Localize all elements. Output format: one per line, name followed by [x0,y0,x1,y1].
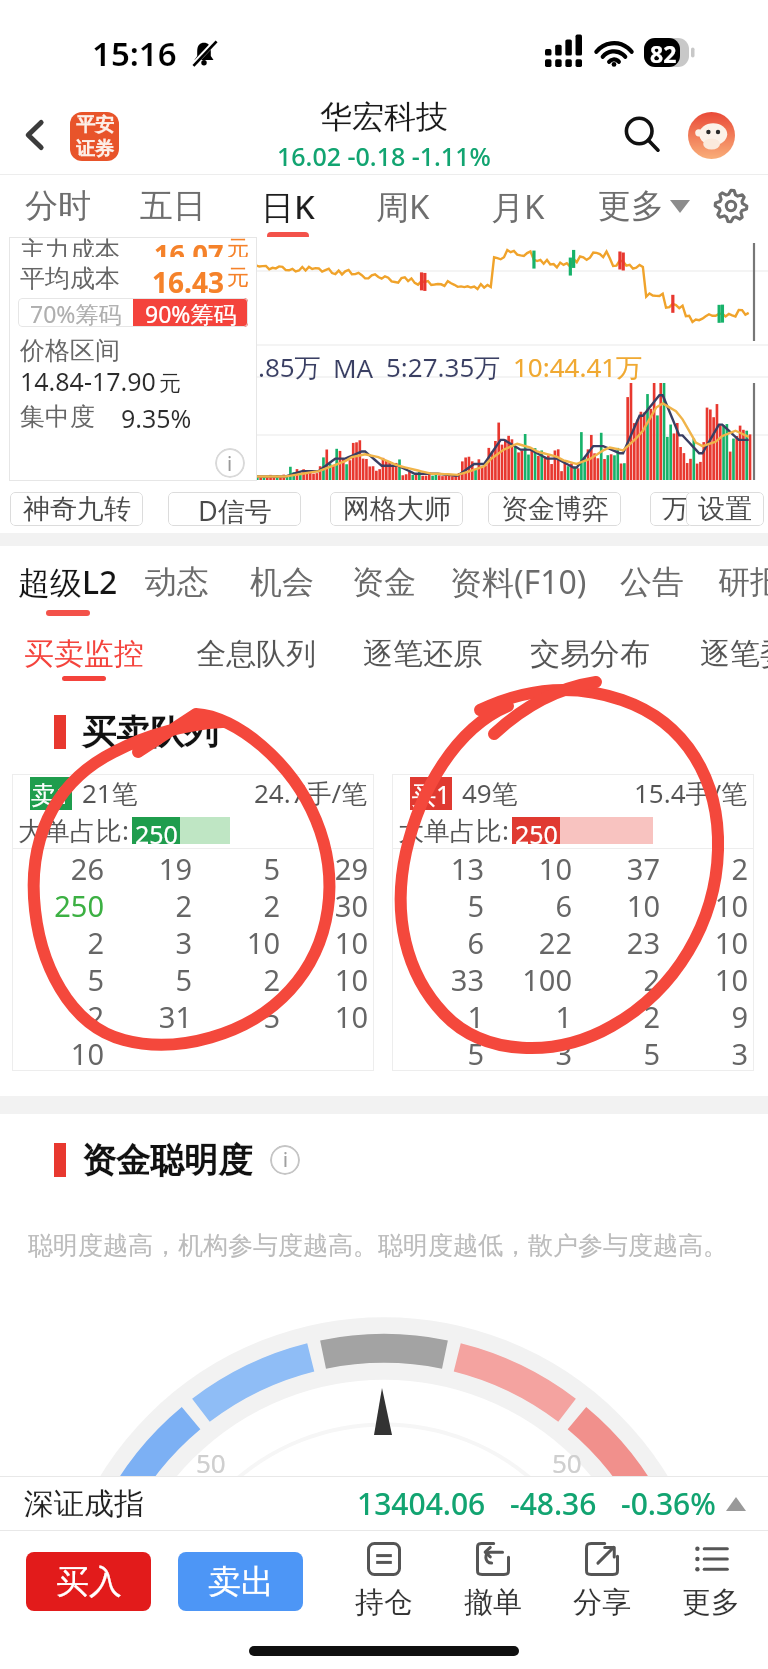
staticText: 2 [87,997,104,1034]
staticText: 机会 [250,562,314,602]
staticText: 日K [261,184,315,229]
staticText: 10 [246,923,280,960]
button[interactable]: 更多 [592,185,696,227]
staticText: 49笔 [462,775,518,811]
staticText: 价格区间 [20,335,120,366]
staticText: 平均成本 [20,263,120,293]
staticText: 2 [643,997,660,1034]
staticText: 买1 [411,777,451,810]
staticText: 2 [263,960,280,997]
button[interactable]: 撤单 [438,1542,547,1621]
staticText: 神奇九转 [23,492,131,526]
button[interactable]: 公告 [608,546,696,617]
button[interactable]: 设置 [686,492,764,526]
staticText: 资金 [352,562,416,602]
staticText: 交易分布 [530,635,650,673]
button[interactable]: Info [270,1145,300,1175]
staticText: 5 [467,1034,484,1071]
button[interactable]: 日K [231,175,344,237]
staticText: 23 [626,923,660,960]
button[interactable]: 万 [650,492,700,526]
button[interactable]: 逐笔还原 [351,617,495,690]
staticText: 10 [714,886,748,923]
staticText: 70%筹码 [30,298,122,327]
staticText: 9.35% [121,401,192,435]
staticText: 15.4手/笔 [634,775,748,811]
staticText: 24.7手/笔 [254,775,368,811]
button[interactable]: Profile [688,112,735,159]
staticText: 撤单 [464,1584,522,1621]
button[interactable]: 研报 [706,546,768,617]
button[interactable]: 资料(F10) [438,546,599,617]
staticText: 16.07 [154,235,224,257]
button[interactable]: 分时 [1,175,114,237]
button[interactable]: 五日 [116,175,229,237]
staticText: 元 [159,370,181,398]
staticText: 3 [731,1034,748,1071]
staticText: 元 [227,264,249,292]
button[interactable]: 逐笔委托 [688,617,768,690]
button[interactable]: 买入 [26,1552,151,1611]
button[interactable]: Info [215,448,245,478]
staticText: 100 [522,960,572,997]
button[interactable]: 卖出 [178,1552,303,1611]
button[interactable]: 90%筹码 [133,298,248,327]
button[interactable]: 月K [461,175,574,237]
button[interactable]: 买卖监控 [12,617,156,690]
button[interactable]: 机会 [238,546,326,617]
staticText: 10 [334,997,368,1034]
staticText: 3 [175,923,192,960]
staticText: 1 [555,997,572,1034]
staticText: D信号 [198,492,272,526]
button[interactable]: 超级L2 [6,546,130,617]
button[interactable]: 周K [346,175,459,237]
button[interactable]: Settings [706,181,756,231]
button[interactable]: 持仓 [329,1542,438,1621]
staticText: 6 [555,886,572,923]
button[interactable]: 分享 [547,1542,656,1621]
staticText: 9 [731,997,748,1034]
staticText: 2 [87,923,104,960]
button[interactable]: D信号 [168,492,301,526]
button[interactable]: Search [614,107,670,163]
staticText: 证券 [76,137,114,161]
button[interactable]: 更多 [656,1542,765,1621]
staticText: 250 [135,817,178,844]
staticText: 2 [175,886,192,923]
button[interactable]: 动态 [133,546,221,617]
button[interactable]: 70%筹码 [18,298,133,327]
staticText: 5 [175,960,192,997]
staticText: 聪明度越高，机构参与度越高。聪明度越低，散户参与度越高。 [28,1230,728,1261]
staticText: 网格大师 [343,492,451,526]
staticText: 资金聪明度 [82,1139,252,1182]
button[interactable]: 神奇九转 [10,492,143,526]
staticText: 更多 [598,185,664,227]
staticText: 19 [158,849,192,886]
button[interactable]: 资金博弈 [488,492,621,526]
button[interactable]: 全息队列 [184,617,328,690]
button[interactable]: Broker [70,112,119,161]
button[interactable]: Back [0,95,70,174]
button[interactable]: 资金 [340,546,428,617]
staticText: i [227,450,233,477]
button[interactable]: 网格大师 [330,492,463,526]
button[interactable]: 交易分布 [518,617,662,690]
staticText: 31 [158,997,192,1034]
staticText: 集中度 [20,401,95,432]
staticText: 月K [491,184,545,229]
staticText: 大单占比: [398,812,509,848]
staticText: 2 [263,886,280,923]
staticText: .85万 [258,349,321,385]
staticText: 26 [70,849,104,886]
staticText: 深证成指 [24,1485,144,1523]
staticText: 30 [334,886,368,923]
staticText: 5 [87,960,104,997]
staticText: 250 [515,817,558,844]
staticText: 华宏科技 [320,97,448,137]
staticText: 14.84-17.90 [20,364,156,398]
staticText: 周K [376,184,430,229]
staticText: 50 [196,1445,226,1480]
staticText: 平安 [76,113,114,137]
staticText: 50 [552,1445,582,1480]
staticText: 买卖监控 [24,635,144,673]
